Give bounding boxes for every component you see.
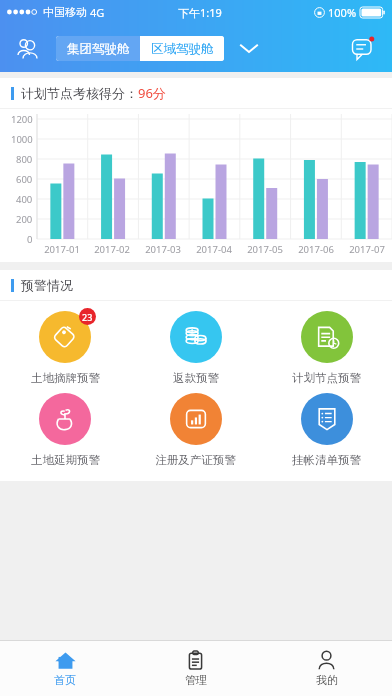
button[interactable]: 土地延期预警: [0, 393, 130, 467]
button[interactable]: 返款预警: [130, 311, 261, 385]
button[interactable]: 区域驾驶舱: [140, 36, 224, 61]
button[interactable]: Messages: [344, 30, 380, 66]
button[interactable]: Contacts: [10, 30, 46, 66]
staticText: 23: [82, 311, 93, 323]
button[interactable]: 注册及产证预警: [130, 393, 261, 467]
staticText: 计划节点预警: [292, 371, 361, 385]
staticText: 2017-04: [196, 243, 232, 256]
staticText: 计划节点考核得分：: [21, 85, 138, 101]
button[interactable]: 我的: [261, 650, 392, 687]
button[interactable]: 挂帐清单预警: [261, 393, 392, 467]
staticText: 土地延期预警: [31, 453, 100, 467]
button[interactable]: Expand: [232, 31, 266, 65]
button[interactable]: 集团驾驶舱: [56, 36, 140, 61]
staticText: 0: [27, 233, 33, 245]
staticText: 2017-06: [298, 243, 334, 256]
staticText: 800: [16, 153, 33, 165]
staticText: 管理: [185, 673, 207, 687]
staticText: 中国移动: [43, 5, 87, 19]
button[interactable]: 计划节点预警: [261, 311, 392, 385]
button[interactable]: 23: [0, 311, 130, 385]
staticText: 2017-05: [247, 243, 283, 256]
staticText: 预警情况: [21, 277, 73, 293]
button[interactable]: 首页: [0, 650, 130, 687]
staticText: 2017-01: [44, 243, 80, 256]
staticText: 2017-03: [145, 243, 181, 256]
staticText: 注册及产证预警: [155, 453, 236, 467]
button[interactable]: 管理: [130, 650, 261, 687]
staticText: 返款预警: [173, 371, 219, 385]
staticText: 4G: [90, 5, 105, 20]
staticText: 我的: [316, 673, 338, 687]
staticText: 首页: [54, 673, 76, 687]
staticText: 区域驾驶舱: [151, 41, 214, 57]
staticText: 400: [16, 193, 33, 205]
staticText: 2017-02: [94, 243, 130, 256]
staticText: 1000: [11, 133, 33, 145]
staticText: 下午1:19: [178, 5, 222, 20]
staticText: 200: [16, 213, 33, 225]
staticText: 96分: [138, 84, 166, 102]
staticText: 1200: [11, 113, 33, 125]
staticText: 挂帐清单预警: [292, 453, 361, 467]
staticText: 2017-07: [349, 243, 385, 256]
staticText: 600: [16, 173, 33, 185]
staticText: 100%: [328, 5, 357, 20]
staticText: 集团驾驶舱: [67, 41, 130, 57]
staticText: 土地摘牌预警: [31, 371, 100, 385]
